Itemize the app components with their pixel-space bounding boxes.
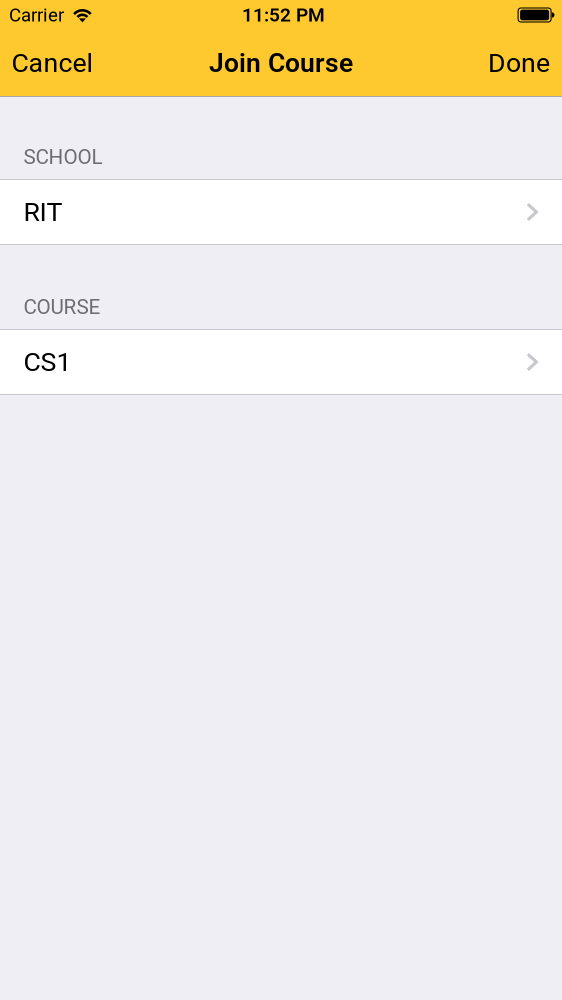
staticText: CS1	[23, 346, 71, 378]
staticText: RIT	[23, 196, 62, 228]
button[interactable]: Done	[476, 30, 562, 96]
staticText: Join Course	[209, 47, 353, 78]
staticText: 11:52 PM	[242, 4, 325, 26]
staticText: Cancel	[11, 47, 92, 79]
staticText: COURSE	[23, 295, 100, 319]
staticText: SCHOOL	[23, 145, 102, 169]
button[interactable]: Cancel	[0, 30, 104, 96]
staticText: Carrier	[9, 4, 64, 26]
staticText: Done	[488, 47, 550, 79]
button[interactable]: RIT	[0, 180, 562, 244]
button[interactable]: CS1	[0, 330, 562, 394]
